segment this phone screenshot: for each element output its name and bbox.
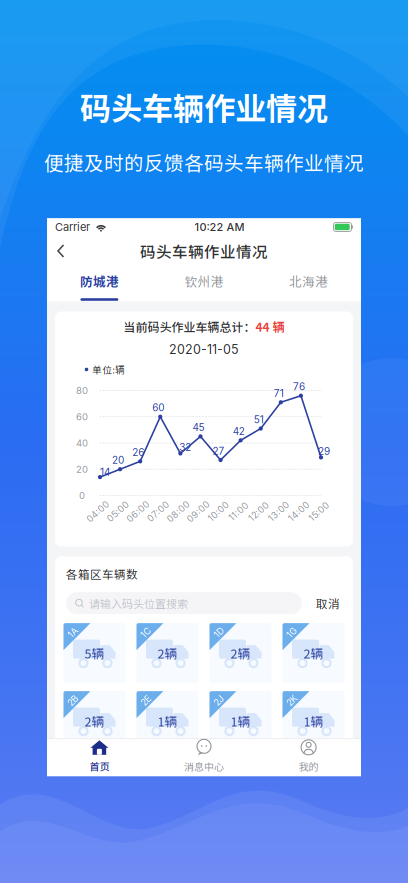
staticText: 1C [140, 627, 151, 638]
button[interactable]: 2K [282, 691, 344, 751]
staticText: 便捷及时的反馈各码头车辆作业情况 [44, 148, 364, 176]
staticText: 51 [254, 413, 264, 426]
staticText: 08:00 [165, 506, 192, 517]
staticText: 40 [76, 437, 88, 449]
staticText: 北海港 [289, 272, 328, 290]
staticText: 1辆 [230, 712, 250, 730]
staticText: 请输入码头位置搜索 [89, 595, 188, 611]
staticText: 2J [214, 695, 224, 706]
staticText: 07:00 [145, 506, 171, 517]
staticText: 取消 [316, 595, 340, 611]
staticText: 当前码头作业车辆总计： [123, 318, 255, 335]
staticText: 09:00 [185, 506, 212, 517]
staticText: 2辆 [303, 644, 323, 662]
staticText: 码头车辆作业情况 [80, 84, 328, 129]
staticText: 11:00 [227, 506, 250, 517]
staticText: 60 [152, 402, 164, 414]
staticText: 60 [76, 411, 88, 422]
staticText: 04:00 [84, 506, 111, 517]
staticText: 26 [132, 446, 144, 458]
button[interactable]: 首页 [47, 739, 152, 776]
staticText: 76 [293, 381, 305, 393]
staticText: 06:00 [125, 506, 152, 517]
staticText: Carrier [55, 220, 90, 234]
button[interactable]: 2B [63, 691, 125, 751]
button[interactable]: 钦州港 [152, 266, 256, 301]
staticText: 钦州港 [184, 272, 223, 290]
staticText: 1A [68, 627, 78, 638]
button[interactable]: 消息中心 [152, 739, 256, 776]
staticText: 15:00 [307, 506, 331, 517]
button[interactable]: 防城港 [47, 266, 152, 301]
button[interactable]: 1C [136, 623, 198, 683]
staticText: 我的 [299, 759, 319, 773]
staticText: 5辆 [84, 644, 104, 662]
staticText: 1G [286, 627, 297, 638]
staticText: 2E [141, 695, 151, 706]
staticText: 各箱区车辆数 [66, 565, 138, 582]
staticText: 71 [274, 387, 284, 399]
button[interactable]: 北海港 [256, 266, 361, 301]
staticText: 消息中心 [184, 759, 224, 773]
staticText: 27 [212, 445, 224, 457]
button[interactable]: 取消 [311, 592, 345, 614]
staticText: 1辆 [157, 712, 177, 730]
button[interactable]: Back [47, 236, 75, 266]
staticText: 42 [233, 425, 245, 437]
staticText: 44 辆 [255, 318, 284, 335]
button[interactable]: 2E [136, 691, 198, 751]
staticText: 2020-11-05 [169, 342, 239, 357]
staticText: 单位:辆 [92, 363, 125, 376]
staticText: 14:00 [286, 506, 311, 517]
staticText: 1D [214, 627, 224, 638]
staticText: 13:00 [266, 506, 291, 517]
button[interactable]: 1A [63, 623, 125, 683]
button[interactable]: 我的 [256, 739, 361, 776]
button[interactable]: 1D [209, 623, 271, 683]
staticText: 码头车辆作业情况 [140, 240, 268, 262]
staticText: 10:00 [206, 506, 231, 517]
staticText: 2B [67, 695, 78, 706]
staticText: 32 [179, 441, 191, 453]
staticText: 80 [76, 385, 88, 396]
staticText: 45 [192, 421, 204, 433]
staticText: 2辆 [230, 644, 250, 662]
staticText: 1辆 [303, 712, 323, 730]
staticText: 29 [318, 445, 330, 457]
button[interactable]: 2J [209, 691, 271, 751]
staticText: 防城港 [80, 272, 119, 290]
staticText: 2K [286, 695, 297, 706]
staticText: 2辆 [84, 712, 104, 730]
staticText: 首页 [89, 759, 109, 773]
staticText: 12:00 [247, 506, 271, 517]
staticText: 14 [100, 466, 110, 478]
staticText: 10:22 AM [194, 220, 244, 234]
button[interactable]: 1G [282, 623, 344, 683]
staticText: 0 [79, 490, 85, 501]
staticText: 05:00 [105, 506, 131, 517]
staticText: 2辆 [157, 644, 177, 662]
staticText: 20 [112, 454, 124, 466]
staticText: 20 [76, 463, 88, 475]
